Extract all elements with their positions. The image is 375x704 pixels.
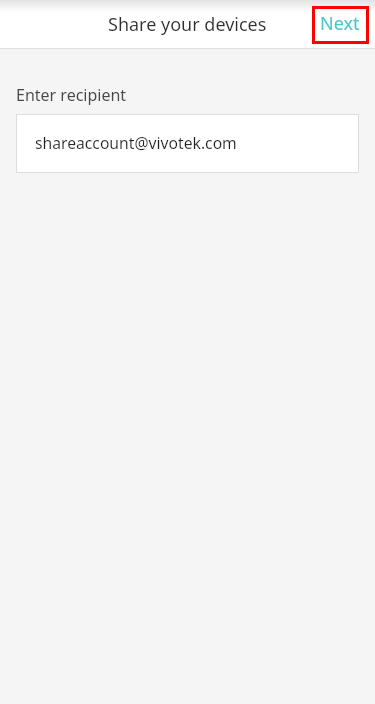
staticText: Share your devices bbox=[108, 12, 267, 37]
staticText: shareaccount@vivotek.com bbox=[35, 132, 237, 153]
button[interactable]: shareaccount@vivotek.com bbox=[16, 114, 359, 173]
button[interactable]: Next bbox=[312, 6, 369, 44]
staticText: Enter recipient bbox=[16, 84, 127, 106]
staticText: Next bbox=[320, 11, 360, 36]
